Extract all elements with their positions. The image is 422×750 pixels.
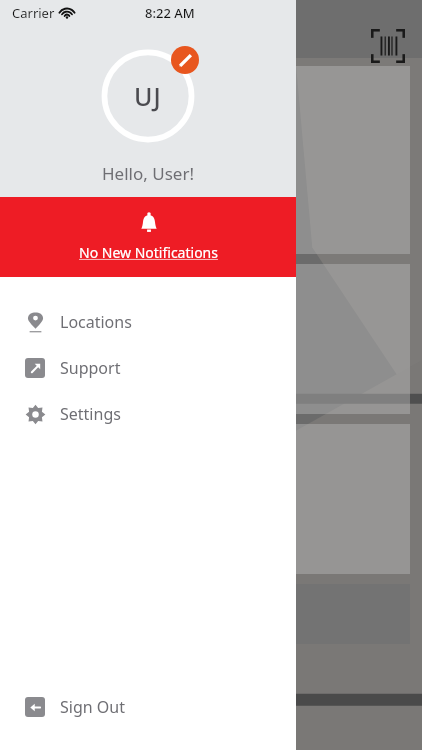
button[interactable] bbox=[12, 584, 410, 644]
button[interactable]: REFER A FRIEND bbox=[12, 66, 410, 254]
staticText: 8:22 AM bbox=[145, 4, 195, 22]
staticText: Settings bbox=[60, 403, 121, 425]
staticText: No New Notifications bbox=[79, 243, 218, 262]
staticText: Carrier bbox=[12, 4, 55, 22]
button[interactable]: No New Notifications bbox=[0, 197, 296, 277]
staticText: Support bbox=[60, 357, 121, 379]
button[interactable]: Sign Out bbox=[0, 684, 296, 730]
staticText: Sign Out bbox=[60, 696, 125, 718]
staticText: Locations bbox=[60, 311, 132, 333]
button[interactable]: DEALS bbox=[12, 424, 410, 574]
staticText: UJ bbox=[134, 79, 162, 113]
button[interactable]: TRAINING bbox=[12, 264, 410, 414]
button[interactable]: Locations bbox=[0, 299, 296, 345]
button[interactable]: Scan barcode bbox=[368, 26, 408, 66]
button[interactable]: Support bbox=[0, 345, 296, 391]
staticText: Hello, User! bbox=[102, 162, 194, 185]
staticText: REFER A FRIEND bbox=[30, 92, 154, 112]
button[interactable]: Settings bbox=[0, 391, 296, 437]
button[interactable]: Edit profile photo bbox=[96, 44, 200, 148]
